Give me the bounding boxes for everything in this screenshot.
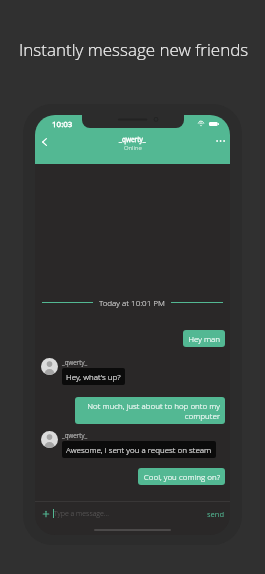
button[interactable]: Awesome, I sent you a request on steam: [62, 441, 216, 458]
staticText: _qwerty_: [119, 135, 146, 144]
button[interactable]: Back: [36, 134, 52, 150]
staticText: Instantly message new friends: [19, 38, 249, 61]
staticText: _qwerty_: [62, 358, 88, 367]
staticText: Hey, what's up?: [66, 371, 121, 382]
button[interactable]: Attach: [39, 507, 52, 520]
button[interactable]: send: [205, 506, 226, 522]
button[interactable]: Hey, what's up?: [62, 368, 125, 385]
staticText: Cool, you coming on?: [143, 471, 220, 482]
staticText: Type a message...: [54, 509, 109, 519]
staticText: _qwerty_: [62, 431, 88, 440]
staticText: 10:03: [52, 118, 73, 129]
button[interactable]: Cool, you coming on?: [138, 468, 225, 485]
button[interactable]: Hey man: [183, 330, 225, 347]
staticText: Online: [124, 144, 142, 152]
staticText: send: [207, 509, 224, 519]
button[interactable]: Not much, just about to hop onto my comp…: [75, 397, 225, 424]
staticText: Awesome, I sent you a request on steam: [66, 444, 212, 455]
staticText: Not much, just about to hop onto my comp…: [80, 400, 220, 421]
button[interactable]: More options: [212, 133, 228, 149]
staticText: Hey man: [188, 333, 220, 344]
staticText: Today at 10:01 PM: [99, 297, 165, 308]
